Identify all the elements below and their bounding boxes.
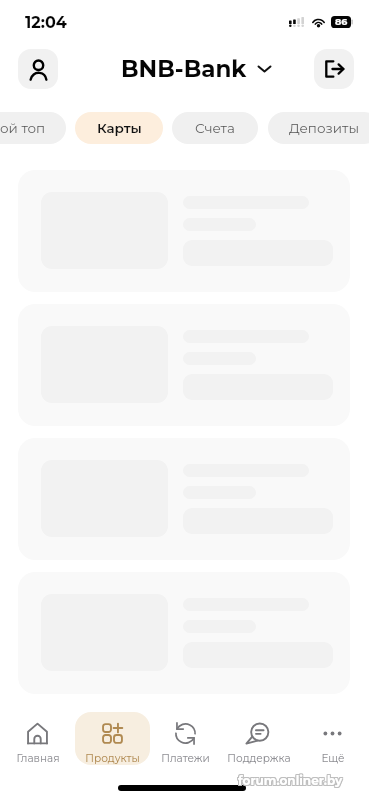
button[interactable] <box>18 572 350 694</box>
staticText: 86 <box>335 16 348 28</box>
button[interactable] <box>18 304 350 426</box>
button[interactable]: Ещё <box>295 712 369 765</box>
button[interactable]: Депозиты <box>268 112 369 144</box>
button[interactable]: Продукты <box>75 712 150 765</box>
staticText: Карты <box>97 120 142 136</box>
staticText: forum.onliner.by <box>237 773 342 788</box>
staticText: Счета <box>195 120 235 136</box>
button[interactable]: Мой топ <box>0 112 66 144</box>
staticText: Платежи <box>161 752 210 765</box>
staticText: forum.onliner.by <box>237 772 342 787</box>
button[interactable] <box>18 438 350 560</box>
staticText: Ещё <box>321 752 345 765</box>
button[interactable]: BNB-Bank <box>121 55 271 83</box>
staticText: forum.onliner.by <box>238 774 343 789</box>
staticText: Мой топ <box>0 120 46 136</box>
staticText: forum.onliner.by <box>237 774 342 789</box>
staticText: Продукты <box>85 752 140 765</box>
button[interactable]: Главная <box>0 712 75 765</box>
staticText: Главная <box>16 752 60 765</box>
button[interactable]: Счета <box>172 112 258 144</box>
staticText: forum.onliner.by <box>238 773 343 788</box>
button[interactable]: Платежи <box>148 712 223 765</box>
staticText: forum.onliner.by <box>239 773 344 788</box>
button[interactable]: Карты <box>75 112 163 144</box>
staticText: forum.onliner.by <box>238 772 343 787</box>
staticText: BNB-Bank <box>121 55 247 83</box>
button[interactable]: Поддержка <box>221 712 296 765</box>
staticText: Поддержка <box>227 752 291 765</box>
staticText: forum.onliner.by <box>239 772 344 787</box>
button[interactable]: Log out <box>314 49 354 89</box>
staticText: 12:04 <box>25 13 67 33</box>
staticText: Депозиты <box>289 120 360 136</box>
staticText: forum.onliner.by <box>239 774 344 789</box>
button[interactable] <box>18 170 350 292</box>
button[interactable]: Profile <box>18 49 58 89</box>
